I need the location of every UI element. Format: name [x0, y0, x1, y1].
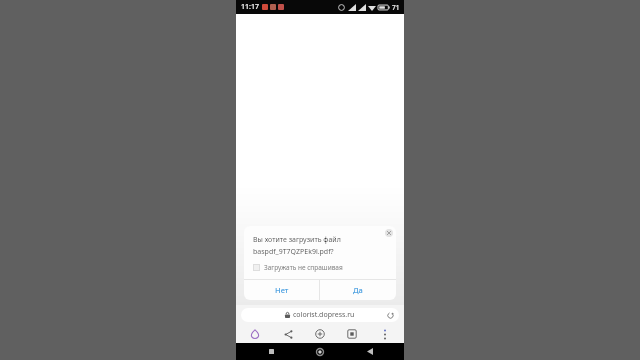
- staticText: Да: [353, 285, 363, 295]
- button[interactable]: colorist.dopress.ru: [241, 308, 399, 322]
- button[interactable]: Обновить: [386, 311, 395, 320]
- button[interactable]: Новая вкладка: [307, 325, 333, 343]
- staticText: 11:17: [241, 2, 259, 12]
- button[interactable]: Домой: [305, 343, 335, 360]
- staticText: colorist.dopress.ru: [293, 310, 355, 320]
- button[interactable]: Меню: [372, 325, 398, 343]
- button[interactable]: Нет: [244, 280, 319, 300]
- button[interactable]: Вкладки: [339, 325, 365, 343]
- button[interactable]: Главная: [242, 325, 268, 343]
- button[interactable]: Да: [320, 280, 396, 300]
- button[interactable]: Закрыть: [385, 229, 393, 237]
- staticText: Загружать не спрашивая: [264, 263, 343, 272]
- staticText: 71: [392, 3, 400, 12]
- button[interactable]: Назад: [355, 343, 385, 360]
- staticText: Нет: [275, 285, 289, 295]
- staticText: baspdf_9T7QZPEk9l.pdf?: [253, 247, 334, 257]
- staticText: Вы хотите загрузить файл: [253, 235, 341, 245]
- button[interactable]: Загружать не спрашивая: [253, 263, 343, 272]
- button[interactable]: Поделиться: [275, 325, 301, 343]
- button[interactable]: Обзор: [256, 343, 286, 360]
